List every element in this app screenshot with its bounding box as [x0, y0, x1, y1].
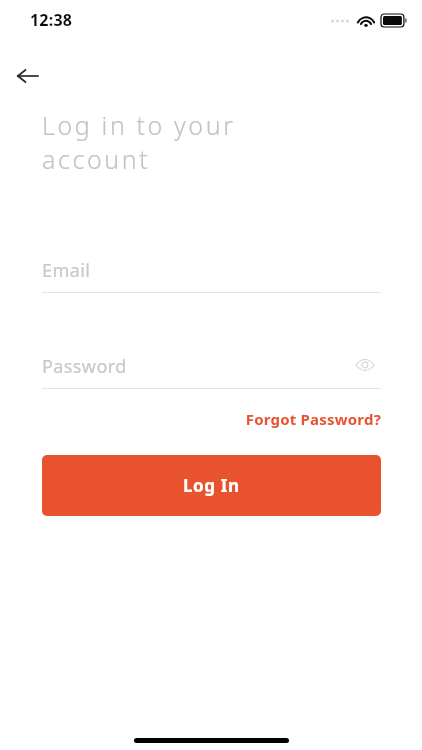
staticText: Password	[42, 354, 127, 379]
button[interactable]: Forgot Password?	[245, 405, 381, 433]
staticText: 12:38	[30, 9, 73, 31]
button[interactable]: Password	[42, 348, 381, 382]
button[interactable]: Log In	[42, 455, 381, 516]
button[interactable]: Email	[42, 252, 381, 286]
button[interactable]: Back	[8, 56, 48, 96]
staticText: Log In	[183, 474, 240, 497]
staticText: account	[42, 142, 151, 176]
staticText: Forgot Password?	[245, 409, 381, 429]
button[interactable]: Show password	[349, 349, 381, 381]
staticText: Log in to your	[42, 108, 236, 142]
staticText: Email	[42, 258, 91, 283]
